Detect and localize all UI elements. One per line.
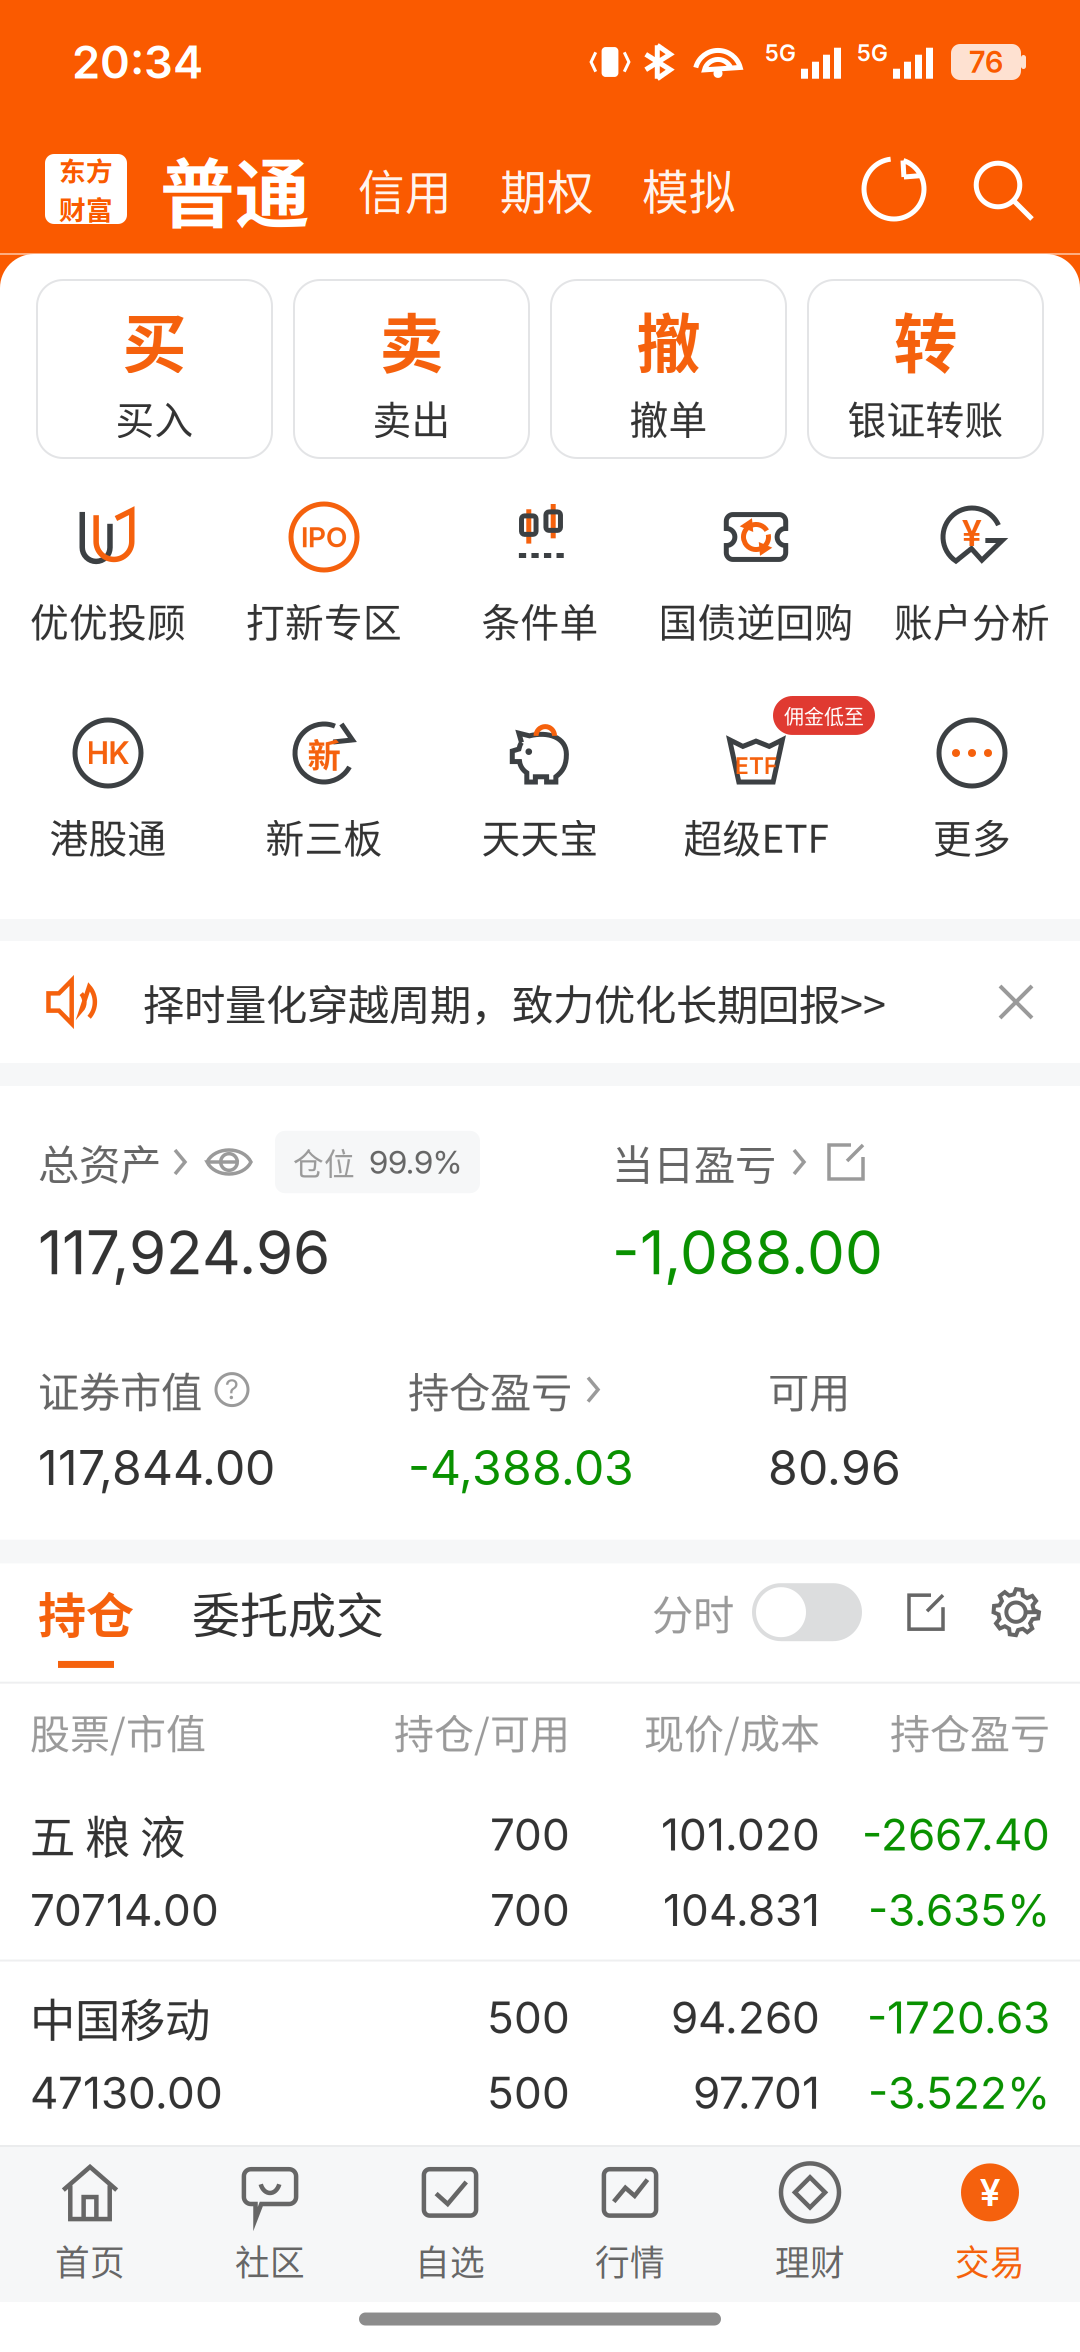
button[interactable]: 普通 (127, 135, 310, 243)
button[interactable]: 天天宝 (432, 700, 648, 919)
button[interactable]: 理财 (720, 2163, 900, 2286)
staticText: 持仓 (38, 1577, 134, 1647)
staticText: -1,088.00 (612, 1216, 883, 1289)
staticText: -4,388.03 (408, 1439, 634, 1497)
staticText: 新三板 (265, 808, 382, 864)
button[interactable]: 优优投顾 (0, 484, 216, 700)
button[interactable]: 买 (37, 280, 272, 458)
staticText: 天天宝 (481, 808, 598, 864)
staticText: 5G (765, 39, 796, 67)
staticText: 财富 (59, 189, 113, 228)
staticText: ¥ (980, 2170, 1000, 2215)
staticText: 港股通 (49, 808, 166, 864)
button[interactable]: IPO (216, 484, 432, 700)
staticText: 撤单 (629, 389, 707, 445)
staticText: 新 (307, 729, 340, 777)
staticText: 优优投顾 (30, 592, 186, 648)
staticText: 现价/成本 (644, 1702, 820, 1760)
staticText: 700 (490, 1808, 570, 1861)
button[interactable]: 择时量化穿越周期，致力优化长期回报>> (0, 941, 1080, 1063)
button[interactable]: 国债逆回购 (648, 484, 864, 700)
button[interactable]: 转 (808, 280, 1043, 458)
staticText: 分时 (652, 1582, 734, 1642)
button[interactable]: 信用 (310, 155, 452, 223)
staticText: 国债逆回购 (658, 592, 853, 648)
staticText: 期权 (500, 155, 594, 223)
staticText: 买入 (115, 389, 193, 445)
staticText: 700 (490, 1883, 570, 1936)
button[interactable]: Toggle intraday (734, 1583, 862, 1662)
button[interactable]: 模拟 (594, 155, 736, 223)
staticText: 99.9% (369, 1143, 462, 1181)
staticText: 社区 (235, 2235, 305, 2286)
button[interactable]: ¥ (900, 2163, 1080, 2286)
button[interactable]: 条件单 (432, 484, 648, 700)
staticText: 117,924.96 (38, 1216, 330, 1289)
button[interactable]: 东方 (45, 154, 127, 224)
button[interactable]: ETF (648, 700, 864, 919)
button[interactable]: 社区 (180, 2163, 360, 2286)
button[interactable]: 委托成交 (134, 1577, 384, 1668)
button[interactable]: 首页 (0, 2163, 180, 2286)
staticText: 证券市值 (38, 1360, 202, 1420)
button[interactable]: 新 (216, 700, 432, 919)
button[interactable]: 自选 (360, 2163, 540, 2286)
staticText: 47130.00 (30, 2066, 223, 2119)
staticText: 持仓盈亏 (408, 1360, 572, 1420)
staticText: 股票/市值 (30, 1702, 206, 1760)
button[interactable]: 更多 (864, 700, 1080, 919)
button[interactable]: 期权 (452, 155, 594, 223)
staticText: 70714.00 (30, 1883, 219, 1936)
button[interactable]: Refresh (861, 156, 927, 222)
staticText: 仓位 (293, 1140, 355, 1184)
staticText: 5G (857, 39, 888, 67)
staticText: 76 (969, 44, 1003, 80)
button[interactable]: 卖 (294, 280, 529, 458)
button[interactable]: Share (862, 1588, 950, 1657)
button[interactable]: 五 粮 液 (0, 1779, 1080, 1960)
staticText: 打新专区 (246, 592, 402, 648)
staticText: 模拟 (642, 155, 736, 223)
staticText: IPO (301, 520, 347, 554)
staticText: 94.260 (671, 1991, 820, 2044)
button[interactable]: ¥ (864, 484, 1080, 700)
staticText: 五 粮 液 (30, 1802, 185, 1867)
staticText: 104.831 (663, 1883, 820, 1936)
staticText: 持仓盈亏 (890, 1702, 1050, 1760)
staticText: 80.96 (768, 1439, 901, 1497)
staticText: 卖 (379, 293, 443, 385)
staticText: 行情 (595, 2235, 665, 2286)
staticText: 条件单 (481, 592, 598, 648)
button[interactable]: Settings (950, 1586, 1042, 1659)
staticText: ¥ (962, 511, 982, 555)
button[interactable]: 持仓 (38, 1577, 134, 1668)
staticText: 500 (487, 2066, 570, 2119)
staticText: -2667.40 (862, 1808, 1050, 1861)
staticText: 当日盈亏 (612, 1132, 776, 1192)
button[interactable]: Search (927, 156, 1035, 222)
button[interactable]: 撤 (551, 280, 786, 458)
staticText: 超级ETF (683, 808, 828, 864)
button[interactable]: 中国移动 (0, 1962, 1080, 2142)
staticText: ETF (735, 752, 777, 780)
staticText: 500 (487, 1991, 570, 2044)
staticText: 择时量化穿越周期，致力优化长期回报>> (143, 972, 886, 1032)
staticText: 中国移动 (30, 1985, 210, 2050)
staticText: 委托成交 (192, 1577, 384, 1647)
staticText: 卖出 (372, 389, 450, 445)
staticText: -3.522% (868, 2066, 1050, 2119)
staticText: ? (225, 1373, 239, 1406)
staticText: -3.635% (868, 1883, 1050, 1936)
staticText: 信用 (358, 155, 452, 223)
staticText: 普通 (160, 135, 310, 243)
staticText: 117,844.00 (38, 1439, 275, 1497)
staticText: 97.701 (693, 2066, 820, 2119)
button[interactable]: HK (0, 700, 216, 919)
staticText: 持仓/可用 (394, 1702, 570, 1760)
button[interactable]: 行情 (540, 2163, 720, 2286)
staticText: 理财 (775, 2235, 845, 2286)
staticText: 账户分析 (894, 592, 1050, 648)
staticText: 银证转账 (847, 389, 1003, 445)
staticText: 撤 (636, 293, 700, 385)
staticText: HK (86, 734, 129, 771)
